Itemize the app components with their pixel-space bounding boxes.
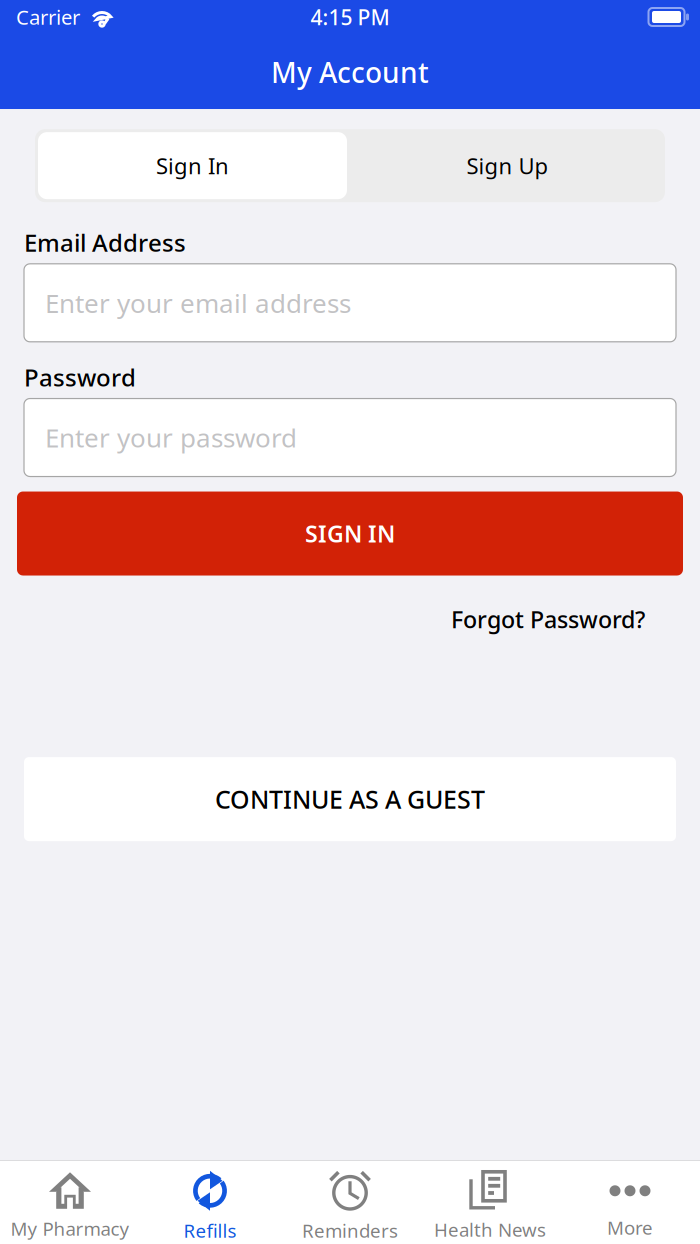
button[interactable]: Refills <box>140 1158 280 1244</box>
staticText: Carrier <box>16 3 80 31</box>
staticText: CONTINUE AS A GUEST <box>215 782 485 816</box>
staticText: 4:15 PM <box>310 3 389 31</box>
staticText: Email Address <box>24 226 186 259</box>
staticText: Password <box>24 361 136 393</box>
staticText: Sign Up <box>466 151 548 181</box>
button[interactable]: Sign In <box>35 129 350 202</box>
button[interactable]: SIGN IN <box>17 491 683 575</box>
staticText: Sign In <box>156 151 229 181</box>
staticText: More <box>607 1215 653 1240</box>
button[interactable]: Enter your email address <box>24 264 676 342</box>
button[interactable]: My Pharmacy <box>0 1160 140 1244</box>
staticText: My Account <box>271 53 429 91</box>
staticText: Enter your password <box>45 420 297 455</box>
button[interactable]: Sign Up <box>350 129 665 202</box>
button[interactable]: CONTINUE AS A GUEST <box>24 757 676 841</box>
staticText: Forgot Password? <box>451 603 645 635</box>
staticText: Reminders <box>302 1218 398 1243</box>
staticText: Enter your email address <box>45 285 351 320</box>
button[interactable]: Reminders <box>280 1158 420 1244</box>
button[interactable]: Enter your password <box>24 398 676 476</box>
staticText: My Pharmacy <box>10 1216 129 1241</box>
button[interactable]: Health News <box>420 1159 560 1244</box>
staticText: Refills <box>183 1218 236 1243</box>
staticText: SIGN IN <box>305 518 395 549</box>
button[interactable]: Forgot Password? <box>451 603 645 635</box>
staticText: Health News <box>434 1217 546 1242</box>
button[interactable]: More <box>560 1161 700 1244</box>
